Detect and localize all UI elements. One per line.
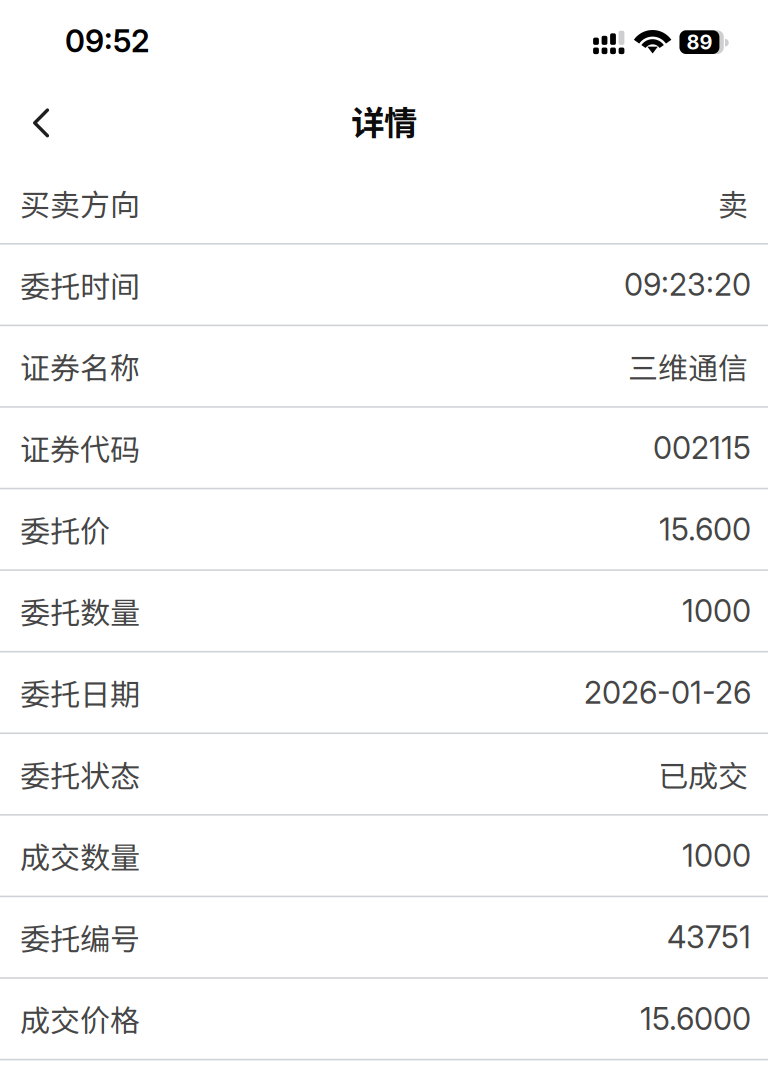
staticText: 成交价格 [20, 997, 140, 1040]
staticText: 买卖方向 [20, 181, 140, 225]
staticText: 002115 [653, 429, 751, 466]
staticText: 15.6000 [640, 1000, 751, 1037]
staticText: 委托数量 [20, 589, 140, 633]
staticText: 15.600 [659, 511, 751, 548]
staticText: 已成交 [658, 752, 748, 796]
button[interactable]: 委托价 [0, 489, 768, 569]
staticText: 1000 [682, 837, 751, 874]
button[interactable]: 成交数量 [0, 816, 768, 896]
button[interactable]: 委托数量 [0, 571, 768, 651]
staticText: 详情 [351, 96, 417, 145]
staticText: 09:52 [65, 22, 150, 59]
staticText: 证券代码 [20, 426, 140, 469]
staticText: 委托编号 [20, 915, 140, 959]
staticText: 43751 [667, 919, 751, 956]
button[interactable]: 返回 [0, 90, 70, 153]
staticText: 三维通信 [628, 344, 748, 388]
button[interactable]: 证券代码 [0, 408, 768, 488]
staticText: 09:23:20 [624, 266, 751, 303]
staticText: 89 [686, 30, 712, 54]
staticText: 委托状态 [20, 752, 140, 796]
staticText: 1000 [682, 592, 751, 629]
button[interactable]: 委托时间 [0, 245, 768, 325]
button[interactable]: 证券名称 [0, 326, 768, 406]
button[interactable]: 委托状态 [0, 734, 768, 814]
staticText: 委托价 [20, 508, 110, 551]
button[interactable]: 委托日期 [0, 652, 768, 732]
staticText: 委托时间 [20, 263, 140, 306]
button[interactable]: 委托编号 [0, 897, 768, 977]
staticText: 2026-01-26 [584, 674, 751, 711]
staticText: 卖 [718, 181, 748, 225]
staticText: 成交数量 [20, 834, 140, 877]
staticText: 委托日期 [20, 671, 140, 714]
button[interactable]: 成交价格 [0, 979, 768, 1059]
button[interactable]: 买卖方向 [0, 163, 768, 243]
staticText: 证券名称 [20, 344, 140, 388]
